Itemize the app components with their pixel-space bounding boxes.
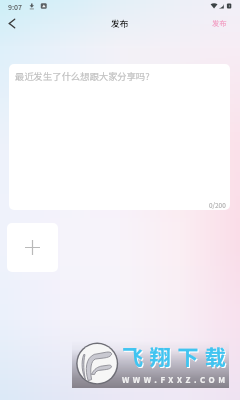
staticText: 飞翔下载	[123, 342, 234, 372]
staticText: 9:07	[8, 2, 23, 12]
button[interactable]: 发布	[204, 14, 240, 32]
staticText: WWW.FXXZ.COM	[122, 374, 229, 386]
staticText: 发布	[212, 18, 227, 28]
button[interactable]: 最近发生了什么想跟大家分享吗?	[9, 64, 230, 210]
staticText: 最近发生了什么想跟大家分享吗?	[15, 69, 150, 82]
staticText: 0/200	[209, 201, 226, 210]
staticText: 发布	[111, 17, 129, 30]
button[interactable]: Back	[0, 14, 24, 32]
staticText: 飞翔下载	[122, 341, 233, 371]
button[interactable]: Add photo	[7, 223, 58, 272]
